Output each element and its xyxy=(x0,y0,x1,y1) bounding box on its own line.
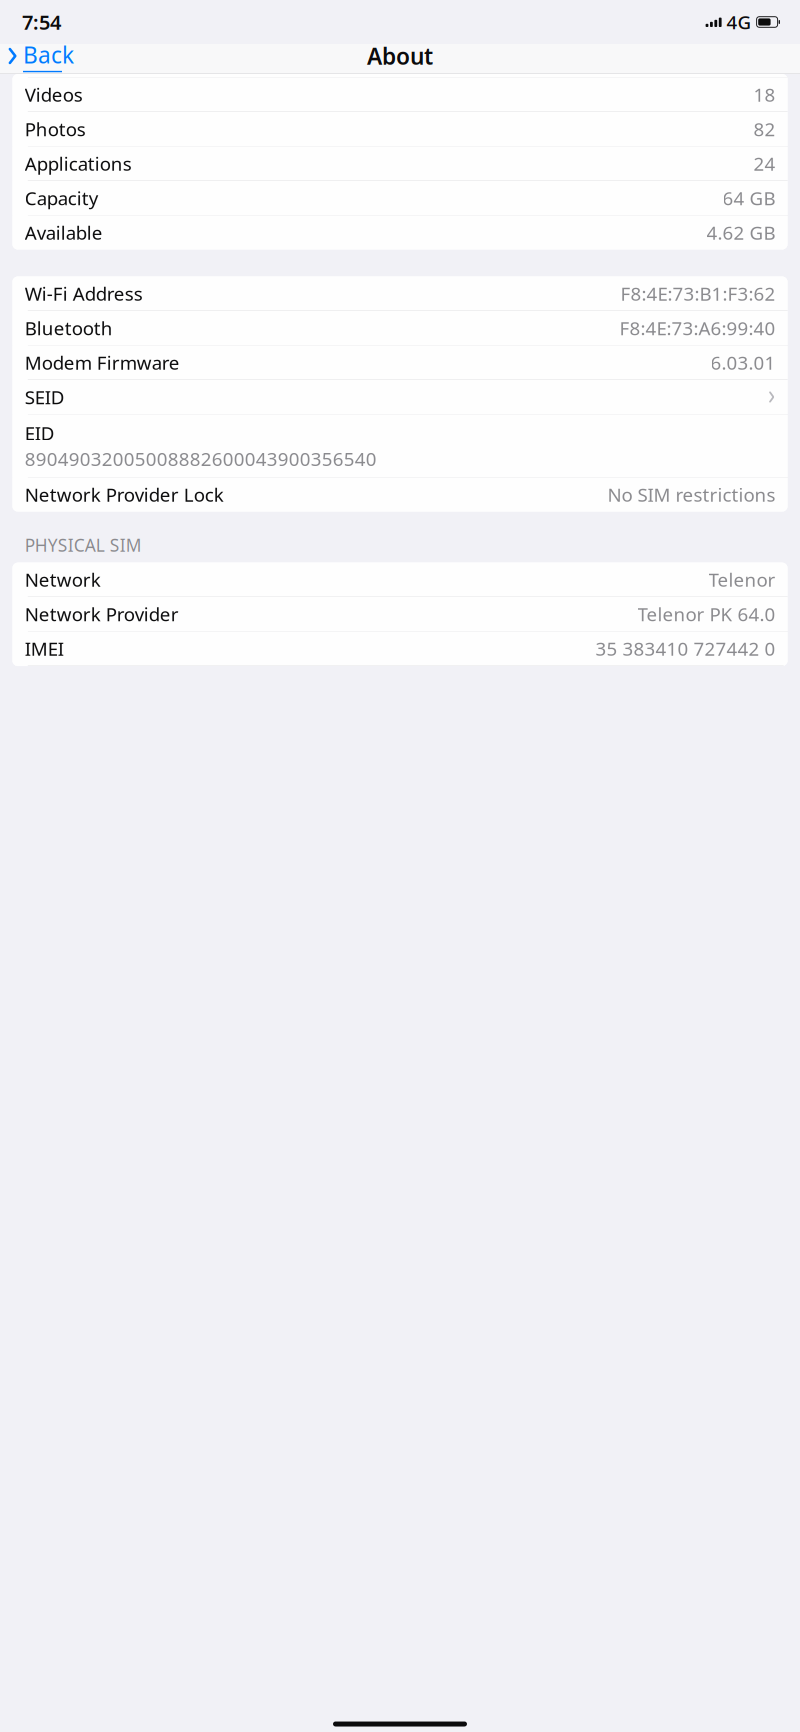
staticText: Wi-Fi Address xyxy=(25,281,143,306)
staticText: Telenor PK 64.0 xyxy=(638,602,776,626)
button[interactable]: Photos xyxy=(12,112,788,146)
staticText: Capacity xyxy=(25,186,99,210)
staticText: 6.03.01 xyxy=(711,350,776,375)
staticText: Telenor xyxy=(709,567,776,592)
staticText: 4.62 GB xyxy=(707,220,776,245)
button[interactable]: IMEI xyxy=(12,632,788,666)
button[interactable]: EID xyxy=(12,414,788,477)
staticText: Videos xyxy=(25,82,83,107)
staticText: No SIM restrictions xyxy=(608,482,776,507)
staticText: 4G xyxy=(727,10,752,34)
staticText: 7:54 xyxy=(22,9,61,35)
staticText: Back xyxy=(23,40,74,70)
staticText: About xyxy=(367,41,433,71)
staticText: F8:4E:73:A6:99:40 xyxy=(620,316,776,340)
staticText: Modem Firmware xyxy=(25,350,180,375)
staticText: PHYSICAL SIM xyxy=(25,534,142,557)
staticText: Bluetooth xyxy=(25,316,113,340)
button[interactable]: Network xyxy=(12,563,788,597)
button[interactable]: Applications xyxy=(12,146,788,180)
staticText: 24 xyxy=(754,151,776,176)
staticText: 82 xyxy=(754,117,776,141)
staticText: 89049032005008882600043900356540 xyxy=(25,446,377,471)
button[interactable]: SEID xyxy=(12,380,788,414)
button[interactable]: Bluetooth xyxy=(12,311,788,345)
staticText: Available xyxy=(25,220,103,245)
staticText: SEID xyxy=(25,385,65,409)
staticText: Applications xyxy=(25,151,132,176)
staticText: IMEI xyxy=(25,636,64,661)
staticText: F8:4E:73:B1:F3:62 xyxy=(621,281,776,306)
staticText: Network Provider xyxy=(25,602,179,626)
button[interactable]: Back xyxy=(0,34,74,78)
button[interactable]: Available xyxy=(12,215,788,249)
button[interactable]: Modem Firmware xyxy=(12,345,788,379)
staticText: Photos xyxy=(25,117,86,141)
button[interactable]: Wi-Fi Address xyxy=(12,276,788,310)
staticText: EID xyxy=(25,420,55,445)
button[interactable]: Videos xyxy=(12,77,788,111)
staticText: Network Provider Lock xyxy=(25,482,224,507)
staticText: 18 xyxy=(754,82,776,107)
staticText: Network xyxy=(25,567,101,592)
staticText: 64 GB xyxy=(723,186,776,210)
button[interactable]: Network Provider Lock xyxy=(12,478,788,512)
button[interactable]: Network Provider xyxy=(12,597,788,631)
staticText: 35 383410 727442 0 xyxy=(596,636,776,661)
button[interactable]: Capacity xyxy=(12,181,788,215)
